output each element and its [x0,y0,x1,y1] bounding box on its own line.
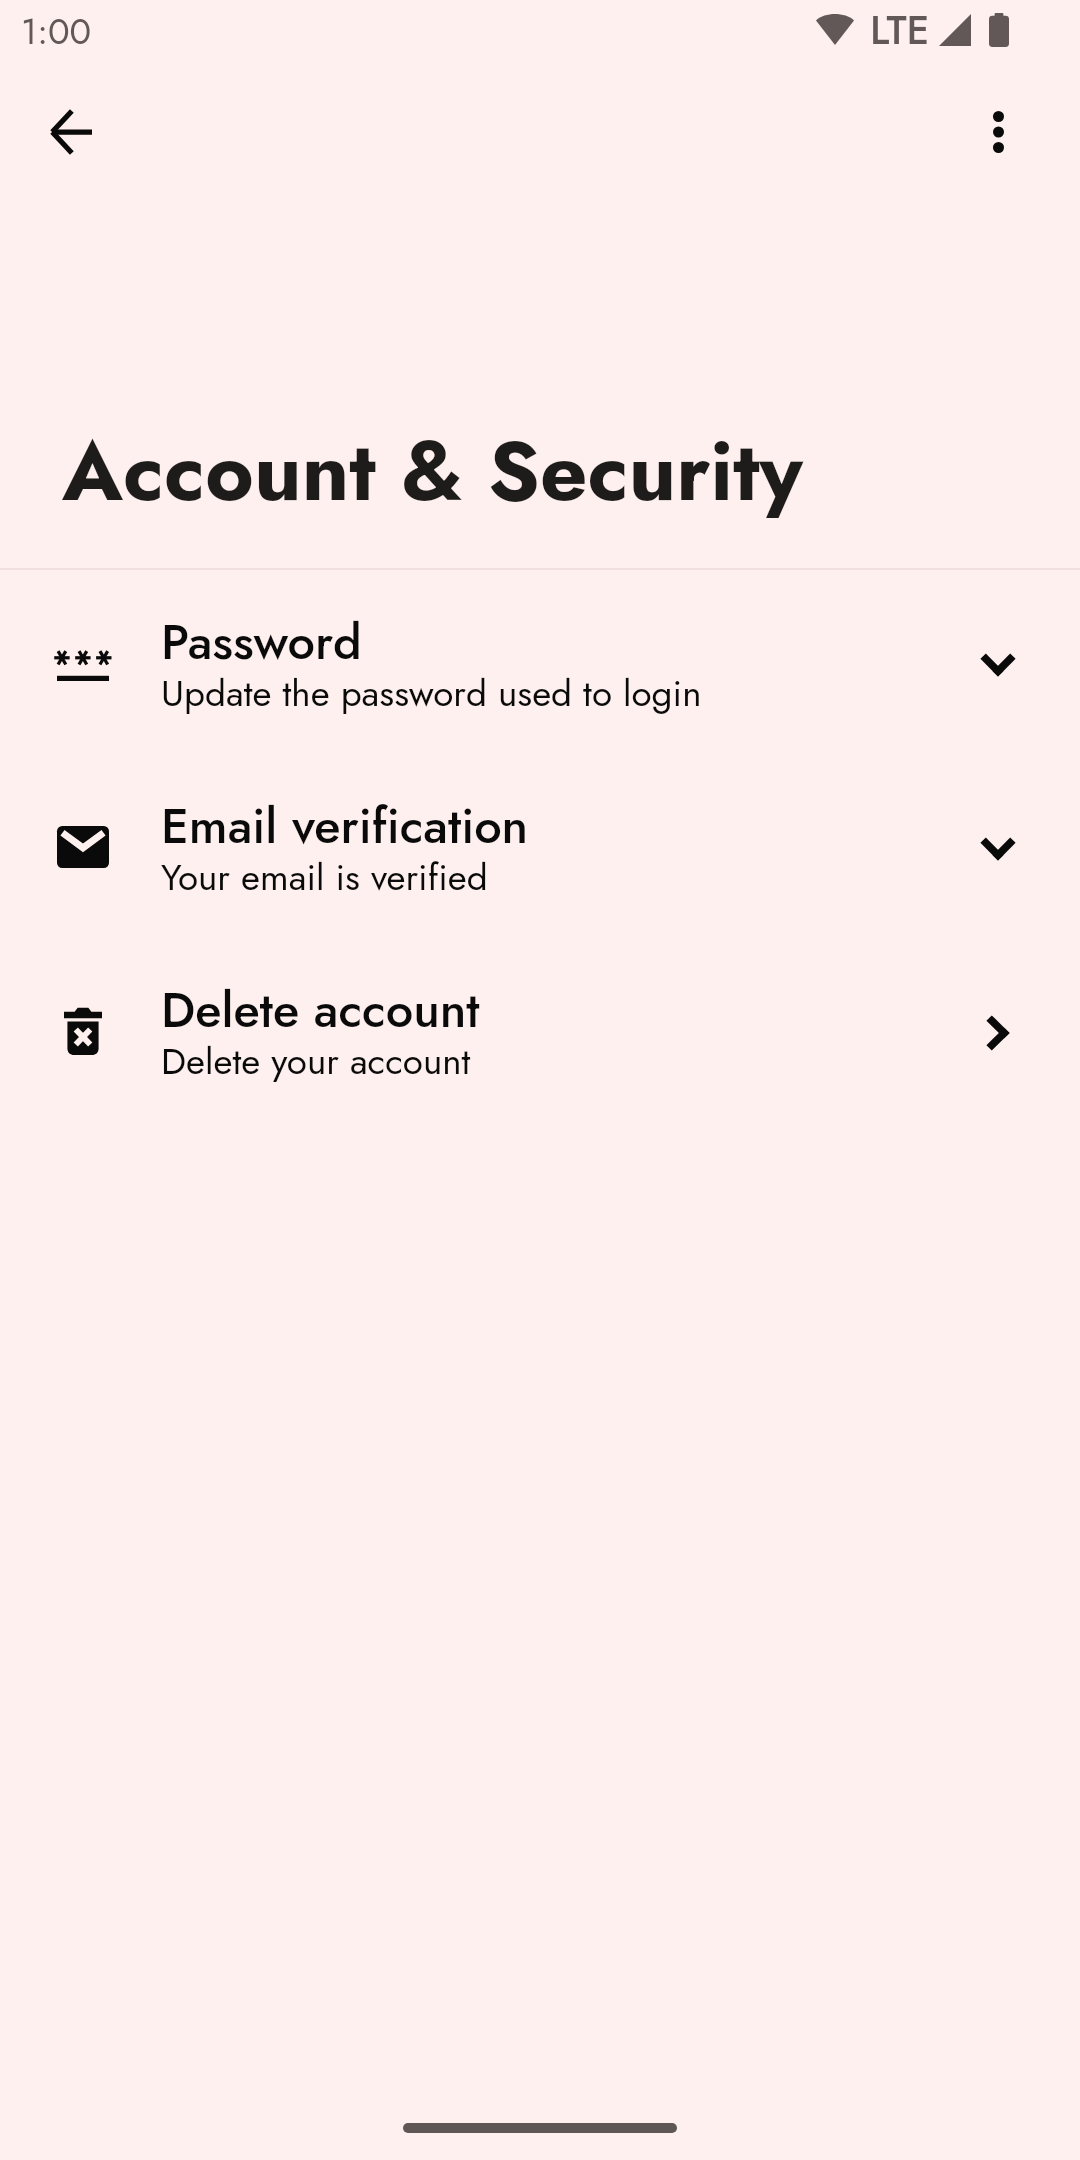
button[interactable]: Delete account [0,962,1080,1112]
staticText: Password [161,607,362,678]
button[interactable]: Open [915,958,1080,1108]
staticText: 1:00 [21,5,92,57]
button[interactable]: Email verification [0,778,1080,928]
staticText: Update the password used to login [161,667,702,720]
button[interactable]: Back [25,86,117,178]
button[interactable]: Expand [915,774,1080,924]
staticText: Delete account [161,975,480,1046]
staticText: LTE [870,1,930,59]
button[interactable]: More options [952,86,1044,178]
button[interactable]: Expand [915,590,1080,740]
staticText: Your email is verified [161,851,488,904]
button[interactable]: Password [0,594,1080,744]
staticText: Email verification [161,791,529,862]
staticText: Account & Security [62,411,803,531]
staticText: Delete your account [161,1035,471,1088]
